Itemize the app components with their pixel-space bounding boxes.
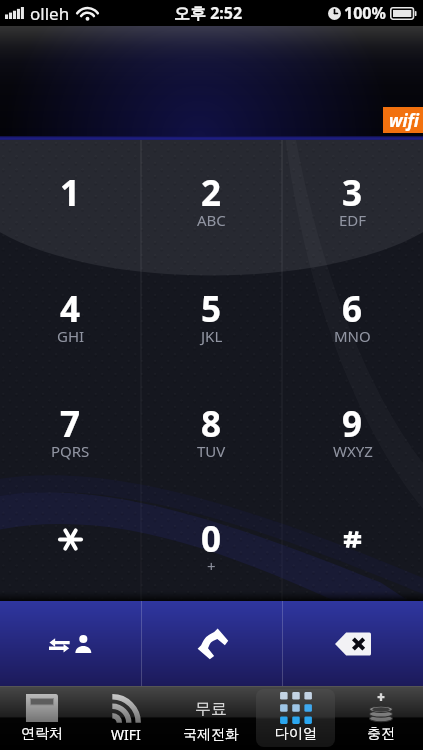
staticText: 국제전화	[183, 726, 239, 744]
staticText: 3	[342, 169, 363, 217]
staticText: GHI	[57, 326, 85, 346]
button[interactable]: Delete	[283, 601, 423, 686]
button[interactable]: 5	[141, 256, 282, 371]
staticText: 0	[201, 515, 222, 563]
staticText: 4	[60, 285, 81, 333]
staticText: JKL	[201, 326, 223, 346]
staticText: ABC	[197, 210, 226, 230]
staticText: 무료	[195, 699, 227, 719]
button[interactable]: 0	[141, 486, 282, 601]
button[interactable]: 무료	[171, 689, 250, 747]
staticText: 5	[201, 285, 222, 333]
staticText: +	[207, 556, 216, 576]
staticText: WXYZ	[333, 441, 373, 461]
button[interactable]	[0, 486, 141, 601]
button[interactable]: 1	[0, 140, 141, 256]
staticText: 2	[201, 169, 222, 217]
button[interactable]: Contacts	[0, 601, 141, 686]
button[interactable]	[282, 486, 423, 601]
staticText: olleh	[30, 2, 70, 25]
staticText: 100%	[344, 2, 386, 24]
staticText: 8	[201, 400, 222, 448]
staticText: WIFI	[111, 725, 141, 744]
staticText: PQRS	[51, 441, 90, 461]
button[interactable]: Call	[142, 601, 282, 686]
button[interactable]: WIFI	[87, 689, 165, 747]
staticText: 6	[342, 285, 363, 333]
button[interactable]: 7	[0, 371, 141, 486]
button[interactable]: 9	[282, 371, 423, 486]
button[interactable]: 3	[282, 140, 423, 256]
button[interactable]: 4	[0, 256, 141, 371]
staticText: EDF	[339, 210, 367, 230]
staticText: 1	[60, 169, 81, 217]
button[interactable]: wifi	[383, 107, 423, 133]
staticText: 다이얼	[275, 725, 317, 743]
staticText: 오후 2:52	[174, 2, 243, 24]
staticText: 연락처	[21, 725, 63, 743]
staticText: 9	[342, 400, 363, 448]
staticText: TUV	[197, 441, 226, 461]
staticText: MNO	[334, 326, 371, 346]
button[interactable]: 2	[141, 140, 282, 256]
button[interactable]: 다이얼	[256, 689, 335, 747]
button[interactable]: 8	[141, 371, 282, 486]
staticText: wifi	[389, 109, 419, 132]
button[interactable]: 6	[282, 256, 423, 371]
staticText: 충전	[367, 725, 395, 743]
button[interactable]: 연락처	[3, 689, 81, 747]
button[interactable]: 충전	[341, 689, 420, 747]
staticText: 7	[60, 400, 81, 448]
